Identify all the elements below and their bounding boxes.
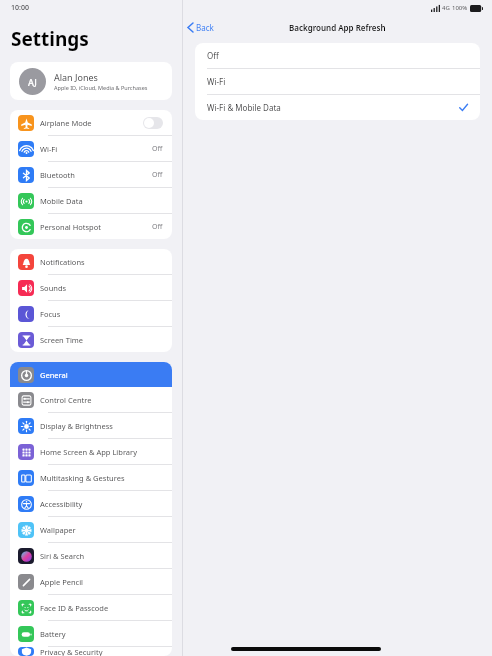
button[interactable]: Focus [10,301,172,326]
staticText: 10:00 [11,3,29,13]
button[interactable]: Airplane Mode [10,110,172,135]
staticText: Airplane Mode [40,118,92,128]
button[interactable]: Screen Time [10,327,172,352]
staticText: Personal Hotspot [40,222,101,232]
staticText: Off [152,222,163,232]
button[interactable]: Battery [10,621,172,646]
staticText: Apple Pencil [40,577,84,587]
staticText: Focus [40,309,61,319]
button[interactable]: Wi-Fi [195,69,480,94]
staticText: Screen Time [40,335,84,345]
staticText: Multitasking & Gestures [40,473,125,483]
staticText: Face ID & Passcode [40,603,109,613]
button[interactable]: Accessibility [10,491,172,516]
staticText: 4G [442,4,450,12]
staticText: General [40,370,68,380]
staticText: Accessibility [40,499,83,509]
button[interactable]: Sounds [10,275,172,300]
staticText: 100% [452,4,468,12]
staticText: Wi-Fi & Mobile Data [207,102,281,113]
staticText: Background App Refresh [289,22,386,33]
staticText: Battery [40,629,66,639]
staticText: Wi-Fi [40,144,58,154]
button[interactable]: Control Centre [10,387,172,412]
button[interactable]: Mobile Data [10,188,172,213]
staticText: Off [152,170,163,180]
button[interactable]: AJ [10,62,172,100]
button[interactable]: Display & Brightness [10,413,172,438]
button[interactable]: Personal Hotspot [10,214,172,239]
staticText: Off [152,144,163,154]
staticText: Wi-Fi [207,76,226,87]
button[interactable]: Multitasking & Gestures [10,465,172,490]
staticText: AJ [28,76,37,88]
staticText: Alan Jones [54,71,98,83]
button[interactable]: Wi-Fi & Mobile Data [195,95,480,120]
button[interactable]: Face ID & Passcode [10,595,172,620]
staticText: Back [196,22,214,33]
staticText: Settings [11,26,89,52]
button[interactable]: Notifications [10,249,172,274]
button[interactable]: Home Screen & App Library [10,439,172,464]
button[interactable]: Apple Pencil [10,569,172,594]
staticText: Apple ID, iCloud, Media & Purchases [54,84,148,91]
staticText: Notifications [40,257,85,267]
button[interactable]: Wallpaper [10,517,172,542]
staticText: Control Centre [40,395,92,405]
button[interactable]: Wi-Fi [10,136,172,161]
staticText: Home Screen & App Library [40,447,137,457]
button[interactable]: Back [183,20,220,35]
staticText: Mobile Data [40,196,83,206]
staticText: Privacy & Security [40,647,103,656]
button[interactable]: Bluetooth [10,162,172,187]
staticText: Sounds [40,283,67,293]
button[interactable]: Off [195,43,480,68]
staticText: Off [207,50,219,61]
button[interactable]: Siri & Search [10,543,172,568]
staticText: Wallpaper [40,525,76,535]
staticText: Siri & Search [40,551,85,561]
button[interactable]: Privacy & Security [10,647,172,656]
button[interactable]: General [10,362,172,387]
staticText: Bluetooth [40,170,75,180]
staticText: Display & Brightness [40,421,113,431]
